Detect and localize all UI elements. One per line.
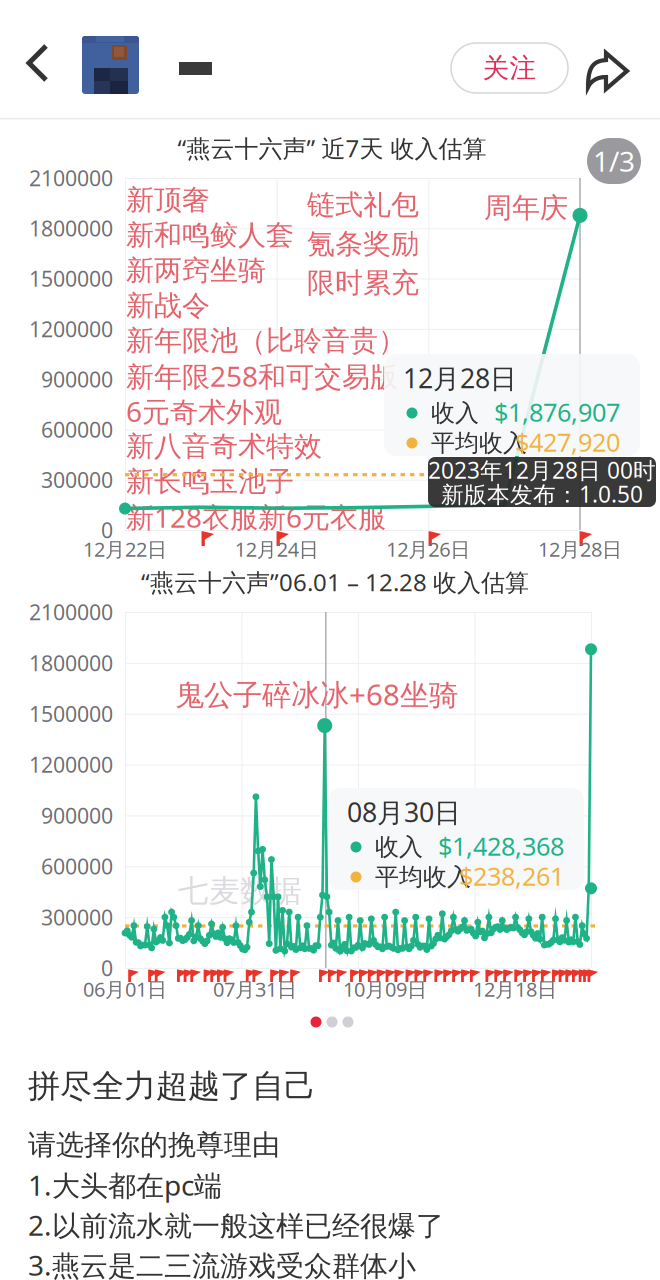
staticText: 300000 — [41, 903, 113, 931]
staticText: 3.燕云是二三流游戏受众群体小 — [28, 1246, 416, 1280]
staticText: 08月30日 — [347, 794, 461, 830]
staticText: 2100000 — [29, 598, 113, 626]
staticText: 七麦数据 — [178, 872, 302, 910]
button[interactable]: 关注 — [0, 0, 117, 50]
staticText: 请选择你的挽尊理由 — [28, 1128, 280, 1162]
staticText: 900000 — [41, 801, 113, 830]
staticText: 1.大头都在pc端 — [28, 1166, 222, 1204]
staticText: 12月26日 — [386, 536, 470, 562]
staticText: 氪条奖励 — [307, 227, 419, 261]
staticText: 关注 — [482, 52, 536, 84]
staticText: 平均收入 — [431, 428, 527, 458]
staticText: 链式礼包 — [307, 188, 419, 222]
staticText: 2.以前流水就一般这样已经很爆了 — [28, 1206, 444, 1244]
staticText: 1/3 — [593, 142, 635, 180]
staticText: 600000 — [41, 415, 113, 444]
staticText: 周年庆 — [484, 191, 568, 225]
staticText: 07月31日 — [213, 976, 297, 1002]
staticText: 10月09日 — [343, 976, 427, 1002]
staticText: 2023年12月28日 00时 — [428, 455, 656, 485]
staticText: 新版本发布：1.0.50 — [441, 479, 643, 509]
staticText: 1800000 — [29, 214, 113, 242]
staticText: 新年限池（比聆音贵） — [126, 324, 406, 358]
staticText: 1500000 — [29, 699, 113, 728]
staticText: 新年限258和可交易版 — [126, 357, 398, 395]
staticText: “燕云十六声” 近7天 收入估算 — [177, 132, 486, 164]
staticText: 0 — [101, 516, 113, 544]
staticText: 600000 — [41, 852, 113, 880]
staticText: $238,261 — [459, 859, 564, 893]
staticText: 限时累充 — [307, 266, 419, 300]
button[interactable]: Back — [0, 0, 70, 110]
staticText: “燕云十六声”06.01 – 12.28 收入估算 — [141, 566, 529, 598]
staticText: 新两窍坐骑 — [126, 253, 266, 288]
staticText: 900000 — [41, 365, 113, 393]
staticText: 300000 — [41, 465, 113, 494]
button[interactable]: Share — [0, 0, 660, 1280]
staticText: 12月22日 — [83, 536, 167, 562]
staticText: 1500000 — [29, 264, 113, 293]
button[interactable]: Page 1 of 3 — [0, 0, 54, 46]
staticText: 收入 — [375, 832, 423, 862]
staticText: 12月28日 — [403, 360, 517, 396]
staticText: $1,876,907 — [494, 395, 620, 429]
staticText: 2100000 — [29, 164, 113, 192]
staticText: 新长鸣玉池子 — [126, 464, 294, 499]
staticText: 0 — [101, 954, 113, 982]
staticText: 1200000 — [29, 315, 113, 343]
staticText: 1800000 — [29, 649, 113, 677]
staticText: 06月01日 — [83, 976, 167, 1002]
staticText: 6元奇术外观 — [126, 393, 282, 430]
staticText: 新和鸣鲛人套 — [126, 218, 294, 252]
staticText: 收入 — [431, 398, 479, 428]
staticText: 新八音奇术特效 — [126, 429, 322, 464]
staticText: $1,428,368 — [438, 829, 564, 863]
staticText: 1200000 — [29, 750, 113, 779]
staticText: $427,920 — [515, 425, 620, 459]
staticText: 新顶奢 — [126, 183, 210, 217]
staticText: 12月24日 — [235, 536, 319, 562]
staticText: 12月18日 — [473, 976, 557, 1002]
staticText: 新战令 — [126, 288, 210, 323]
staticText: 平均收入 — [375, 862, 471, 892]
staticText: 拼尽全力超越了自己 — [28, 1066, 316, 1106]
staticText: 12月28日 — [538, 536, 622, 562]
staticText: 鬼公子碎冰冰+68坐骑 — [175, 674, 458, 713]
staticText: 新128衣服新6元衣服 — [126, 498, 386, 535]
